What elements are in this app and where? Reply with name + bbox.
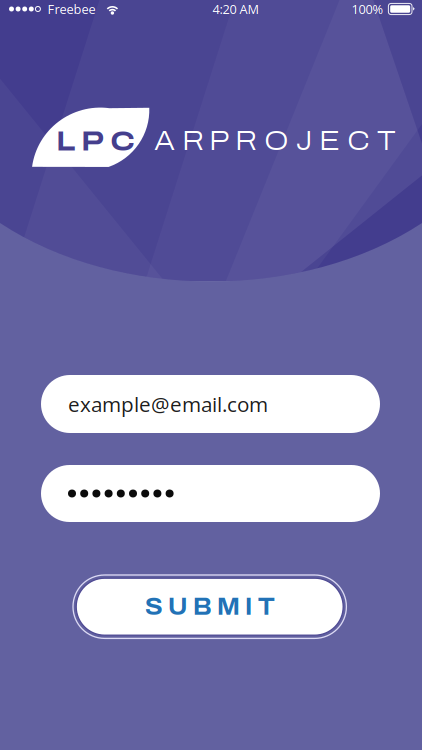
staticText: A R P R O J E C T bbox=[154, 126, 396, 156]
staticText: L P C bbox=[56, 127, 135, 156]
staticText: S U B M I T bbox=[145, 594, 275, 620]
staticText: example@email.com bbox=[68, 390, 268, 418]
staticText: Freebee bbox=[47, 0, 95, 18]
staticText: 100% bbox=[351, 0, 383, 18]
staticText: 4:20 AM bbox=[212, 0, 259, 18]
button[interactable]: S U B M I T bbox=[73, 575, 346, 638]
